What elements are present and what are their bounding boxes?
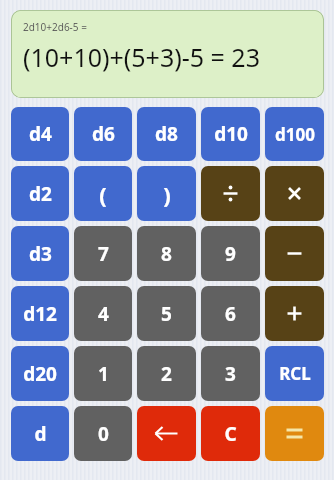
- staticText: d3: [29, 241, 52, 267]
- staticText: d6: [92, 121, 115, 147]
- button[interactable]: Divide: [201, 166, 260, 221]
- button[interactable]: 9: [201, 226, 260, 281]
- staticText: (: [99, 179, 107, 209]
- staticText: (10+10)+(5+3)-5 = 23: [23, 40, 260, 74]
- button[interactable]: d4: [11, 107, 69, 161]
- button[interactable]: 1: [74, 346, 132, 401]
- button[interactable]: d6: [74, 107, 132, 161]
- staticText: 9: [225, 241, 236, 267]
- staticText: d100: [275, 123, 315, 146]
- button[interactable]: Minus: [265, 226, 324, 281]
- button[interactable]: 2: [137, 346, 196, 401]
- staticText: d12: [23, 301, 57, 327]
- staticText: ): [163, 179, 171, 209]
- staticText: 2: [161, 361, 172, 387]
- staticText: 3: [225, 361, 236, 387]
- button[interactable]: 4: [74, 286, 132, 341]
- button[interactable]: 0: [74, 406, 132, 461]
- button[interactable]: d8: [137, 107, 196, 161]
- button[interactable]: d12: [11, 286, 69, 341]
- button[interactable]: 3: [201, 346, 260, 401]
- button[interactable]: d: [11, 406, 69, 461]
- button[interactable]: 8: [137, 226, 196, 281]
- button[interactable]: Plus: [265, 286, 324, 341]
- staticText: C: [224, 421, 237, 447]
- staticText: 5: [161, 301, 172, 327]
- button[interactable]: d2: [11, 166, 69, 221]
- button[interactable]: C: [201, 406, 260, 461]
- staticText: 8: [161, 241, 172, 267]
- staticText: d8: [155, 121, 178, 147]
- staticText: 4: [98, 301, 109, 327]
- staticText: RCL: [279, 362, 311, 385]
- staticText: d2: [29, 181, 52, 207]
- staticText: 6: [225, 301, 236, 327]
- button[interactable]: d10: [201, 107, 260, 161]
- button[interactable]: RCL: [265, 346, 324, 401]
- button[interactable]: ): [137, 166, 196, 221]
- button[interactable]: (: [74, 166, 132, 221]
- staticText: 1: [98, 361, 109, 387]
- staticText: d4: [29, 121, 52, 147]
- button[interactable]: Equals: [265, 406, 324, 461]
- staticText: d: [34, 421, 47, 447]
- staticText: d20: [23, 361, 57, 387]
- button[interactable]: d3: [11, 226, 69, 281]
- button[interactable]: 7: [74, 226, 132, 281]
- button[interactable]: 6: [201, 286, 260, 341]
- button[interactable]: d20: [11, 346, 69, 401]
- button[interactable]: d100: [265, 107, 324, 161]
- button[interactable]: Multiply: [265, 166, 324, 221]
- staticText: d10: [214, 121, 248, 147]
- staticText: 7: [98, 241, 109, 267]
- button[interactable]: 5: [137, 286, 196, 341]
- button[interactable]: Backspace: [137, 406, 196, 461]
- staticText: 2d10+2d6-5 =: [23, 20, 87, 34]
- staticText: 0: [98, 421, 109, 447]
